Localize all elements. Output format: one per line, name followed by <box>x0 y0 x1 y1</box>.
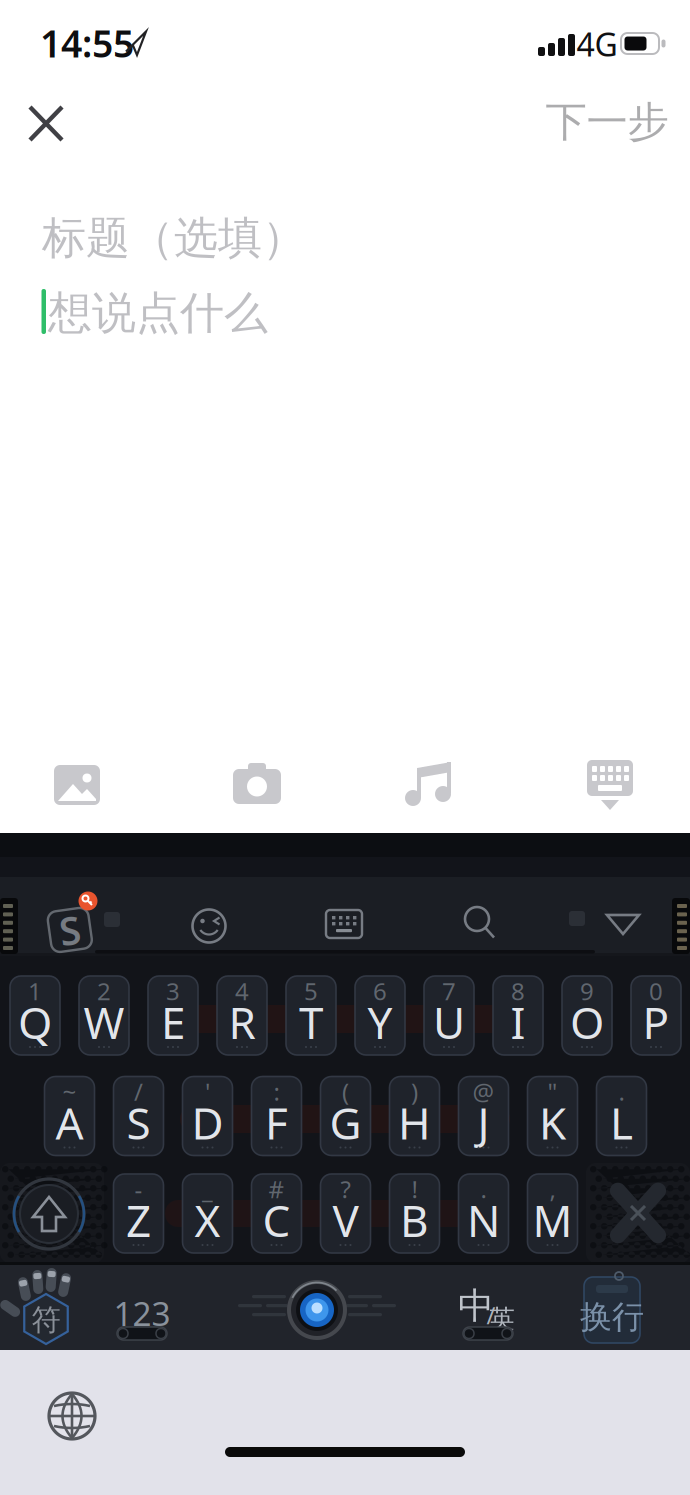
staticText: 123 <box>113 1291 170 1335</box>
button[interactable]: . <box>458 1174 508 1253</box>
staticText: H <box>398 1093 431 1152</box>
button[interactable]: / <box>113 1076 163 1155</box>
staticText: S <box>126 1093 150 1152</box>
button[interactable]: 6 <box>355 976 405 1055</box>
button[interactable]: 空格 <box>237 1265 397 1355</box>
staticText: 想说点什么 <box>48 286 268 340</box>
button[interactable]: 照片 <box>45 753 109 817</box>
staticText: @ <box>472 1076 494 1107</box>
staticText: R <box>228 993 255 1051</box>
button[interactable]: , <box>527 1174 577 1253</box>
button[interactable]: # <box>251 1174 301 1253</box>
button[interactable]: 数字 <box>97 1276 187 1356</box>
staticText: . <box>618 1076 624 1107</box>
button[interactable]: 2 <box>79 976 129 1055</box>
button[interactable]: ) <box>389 1076 439 1155</box>
staticText: ! <box>411 1173 417 1205</box>
staticText: 标题（选填） <box>42 211 306 265</box>
staticText: D <box>191 1093 223 1152</box>
button[interactable]: 7 <box>424 976 474 1055</box>
staticText: ~ <box>62 1076 76 1107</box>
staticText: 中 <box>458 1284 494 1328</box>
button[interactable]: - <box>113 1174 163 1253</box>
staticText: E <box>161 993 185 1051</box>
staticText: . <box>480 1173 486 1205</box>
button[interactable]: 删除 <box>588 1164 688 1262</box>
staticText: 14:55 <box>40 18 134 68</box>
button[interactable]: ' <box>182 1076 232 1155</box>
staticText: 4G <box>576 23 617 65</box>
staticText: : <box>273 1076 279 1107</box>
button[interactable]: 0 <box>631 976 681 1055</box>
button[interactable]: 搜索 <box>448 891 512 955</box>
staticText: U <box>433 993 465 1051</box>
staticText: S <box>58 904 79 956</box>
button[interactable]: ! <box>389 1174 439 1253</box>
button[interactable]: 3 <box>148 976 198 1055</box>
button[interactable]: _ <box>182 1174 232 1253</box>
staticText: 符 <box>31 1302 60 1338</box>
staticText: 1 <box>28 975 42 1007</box>
button[interactable]: 搜狗输入法 <box>31 886 107 962</box>
button[interactable]: 9 <box>562 976 612 1055</box>
staticText: Q <box>18 993 52 1051</box>
button[interactable]: ~ <box>44 1076 94 1155</box>
staticText: Y <box>367 993 392 1051</box>
button[interactable]: ? <box>320 1174 370 1253</box>
staticText: 0 <box>649 975 663 1007</box>
staticText: B <box>400 1191 429 1249</box>
staticText: ? <box>340 1173 350 1205</box>
button[interactable]: 音乐 <box>399 754 463 818</box>
staticText: 6 <box>373 975 387 1007</box>
staticText: / <box>486 1299 495 1331</box>
staticText: W <box>83 993 124 1051</box>
staticText: # <box>268 1173 284 1205</box>
staticText: G <box>329 1093 361 1152</box>
button[interactable]: . <box>596 1076 646 1155</box>
staticText: 3 <box>166 975 180 1007</box>
staticText: _ <box>202 1173 213 1205</box>
staticText: ) <box>411 1076 418 1107</box>
button[interactable]: 8 <box>493 976 543 1055</box>
button[interactable]: 5 <box>286 976 336 1055</box>
button[interactable]: 符号 <box>8 1269 88 1353</box>
staticText: 2 <box>97 975 111 1007</box>
button[interactable]: 中英文切换 <box>440 1276 536 1356</box>
staticText: F <box>265 1093 288 1152</box>
staticText: 9 <box>580 975 594 1007</box>
staticText: 4 <box>235 975 249 1007</box>
button[interactable]: 收起工具栏 <box>591 892 655 956</box>
button[interactable]: 收起键盘 <box>578 754 642 818</box>
button[interactable]: 关闭 <box>14 91 78 155</box>
staticText: ( <box>342 1076 349 1107</box>
button[interactable]: 1 <box>10 976 60 1055</box>
button[interactable]: 键盘 <box>312 892 376 956</box>
staticText: 英 <box>489 1303 514 1334</box>
button[interactable]: 切换键盘 <box>40 1384 104 1448</box>
staticText: 7 <box>442 975 456 1007</box>
staticText: A <box>55 1093 83 1152</box>
staticText: I <box>510 993 525 1051</box>
button[interactable]: " <box>527 1076 577 1155</box>
staticText: - <box>134 1173 142 1205</box>
staticText: T <box>299 993 323 1051</box>
button[interactable]: 4 <box>217 976 267 1055</box>
staticText: M <box>532 1191 572 1249</box>
staticText: 下一步 <box>545 97 668 147</box>
button[interactable]: 下一步 <box>547 94 667 150</box>
button[interactable]: 拍照 <box>225 753 289 817</box>
staticText: 8 <box>511 975 525 1007</box>
button[interactable]: ( <box>320 1076 370 1155</box>
button[interactable]: @ <box>458 1076 508 1155</box>
staticText: J <box>477 1093 489 1152</box>
staticText: " <box>547 1076 557 1107</box>
staticText: N <box>467 1191 500 1249</box>
staticText: 5 <box>304 975 318 1007</box>
button[interactable]: 换行 <box>576 1272 648 1356</box>
button[interactable]: 表情 <box>177 894 241 958</box>
staticText: 换行 <box>580 1297 644 1337</box>
staticText: ' <box>205 1076 210 1107</box>
staticText: , <box>549 1173 555 1205</box>
button[interactable]: Shift <box>7 1172 91 1256</box>
button[interactable]: : <box>251 1076 301 1155</box>
